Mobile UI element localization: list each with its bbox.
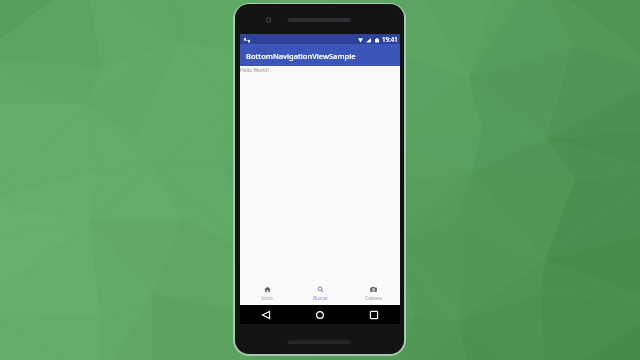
staticText: Inicio (261, 295, 273, 301)
staticText: BottomNavigationViewSample (246, 51, 356, 61)
staticText: 19:41 (382, 35, 398, 43)
button[interactable]: Cámara (347, 281, 400, 305)
button[interactable]: Inicio (240, 281, 294, 305)
staticText: Cámara (365, 295, 382, 301)
button[interactable]: Recent apps (366, 305, 382, 324)
button[interactable]: Buscar (294, 281, 347, 305)
staticText: Hello World! (240, 67, 269, 74)
button[interactable]: Back (258, 305, 274, 324)
button[interactable]: Home (312, 305, 328, 324)
staticText: Buscar (313, 295, 328, 301)
